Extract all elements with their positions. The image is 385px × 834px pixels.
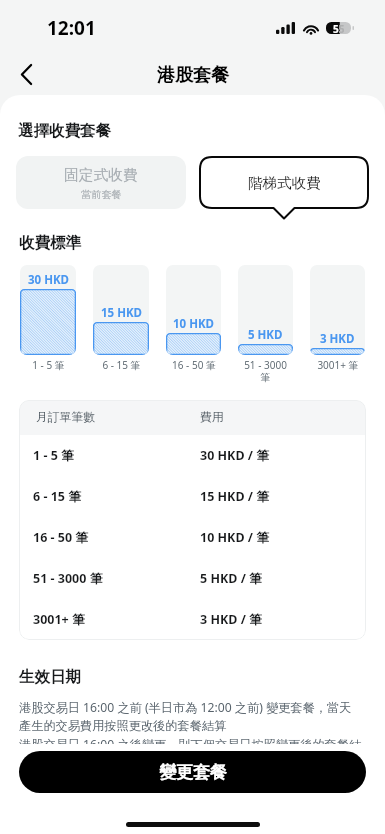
staticText: 55	[333, 22, 345, 34]
staticText: 階梯式收費	[248, 174, 321, 192]
staticText: 55	[333, 22, 345, 34]
button[interactable]: Back	[8, 56, 44, 92]
staticText: 3 HKD	[320, 331, 355, 347]
button[interactable]: 階梯式收費	[199, 156, 369, 209]
staticText: 1 - 5 筆	[32, 358, 65, 372]
staticText: 收費標準	[19, 233, 81, 253]
staticText: 費用	[200, 410, 224, 425]
staticText: 1 - 5 筆	[33, 447, 200, 464]
staticText: 6 - 15 筆	[102, 358, 141, 372]
staticText: 3 HKD / 筆	[200, 611, 262, 628]
staticText: 港股套餐	[157, 64, 229, 87]
staticText: 固定式收費	[64, 166, 138, 185]
staticText: 15 HKD	[101, 305, 142, 321]
staticText: 30 HKD	[28, 272, 69, 288]
staticText: 16 - 50 筆	[172, 358, 216, 372]
staticText: 15 HKD / 筆	[200, 488, 269, 505]
staticText: 生效日期	[19, 667, 81, 687]
staticText: 月訂單筆數	[36, 410, 200, 425]
staticText: 5 HKD / 筆	[200, 570, 262, 587]
staticText: 51 - 3000 筆	[238, 358, 293, 384]
staticText: 10 HKD	[173, 316, 214, 332]
staticText: 16 - 50 筆	[33, 529, 200, 546]
staticText: 51 - 3000 筆	[33, 570, 200, 587]
staticText: 港股交易日 16:00 之前 (半日市為 12:00 之前) 變更套餐，當天 產…	[19, 699, 368, 770]
staticText: 選擇收費套餐	[18, 121, 111, 141]
staticText: 10 HKD / 筆	[200, 529, 269, 546]
button[interactable]: 變更套餐	[19, 751, 366, 793]
staticText: 30 HKD / 筆	[200, 447, 269, 464]
staticText: 6 - 15 筆	[33, 488, 200, 505]
staticText: 5 HKD	[248, 327, 283, 343]
button[interactable]: 固定式收費	[16, 156, 186, 209]
staticText: 當前套餐	[81, 188, 122, 201]
staticText: 變更套餐	[159, 762, 227, 783]
staticText: 3001+ 筆	[317, 358, 359, 372]
staticText: 12:01	[47, 15, 96, 41]
staticText: 3001+ 筆	[33, 611, 200, 628]
